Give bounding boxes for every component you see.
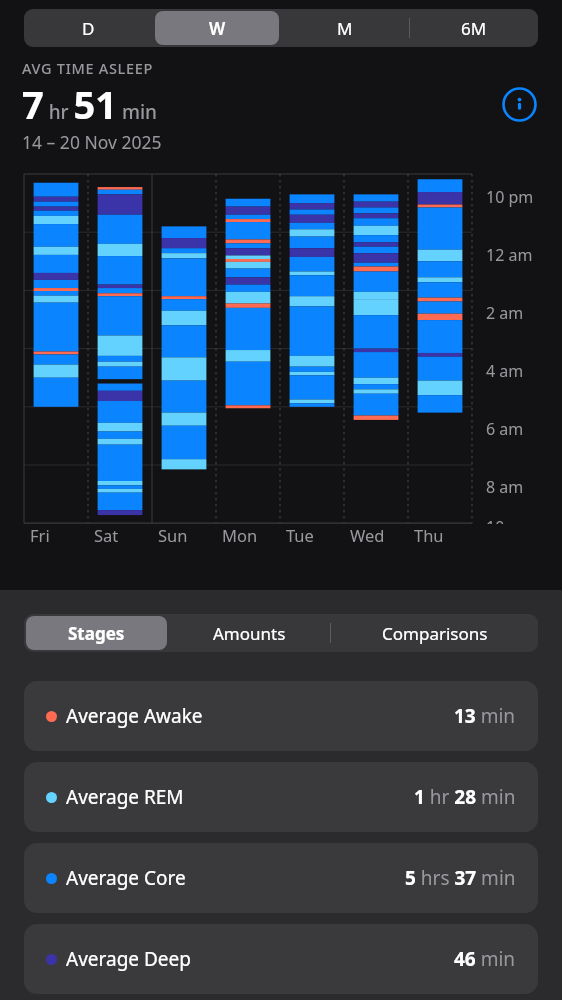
button[interactable]: Amounts [171, 616, 328, 650]
staticText: Average REM [66, 784, 414, 810]
staticText: Average Core [66, 865, 405, 891]
button[interactable]: Info [498, 83, 540, 125]
button[interactable]: W [155, 11, 279, 45]
staticText: 10 pm [486, 186, 534, 208]
staticText: 6 am [486, 418, 524, 440]
staticText: D [82, 17, 95, 40]
button[interactable]: Comparisons [333, 616, 536, 650]
staticText: Tue [286, 524, 314, 546]
staticText: 5 hrs 37 min [405, 865, 516, 891]
staticText: 7 hr 51 min [22, 78, 498, 130]
staticText: 4 am [486, 360, 524, 382]
staticText: 1 hr 28 min [414, 784, 516, 810]
staticText: Thu [414, 524, 444, 546]
button[interactable]: D [26, 11, 151, 45]
staticText: Sun [158, 524, 188, 546]
staticText: 46 min [454, 946, 516, 972]
staticText: 12 am [486, 244, 533, 266]
staticText: W [209, 17, 226, 40]
button[interactable]: Average Awake [24, 681, 538, 751]
staticText: M [337, 17, 353, 40]
staticText: 10 am [486, 516, 533, 524]
staticText: Stages [68, 622, 125, 645]
staticText: Average Awake [66, 703, 454, 729]
staticText: 6M [461, 17, 487, 40]
staticText: AVG TIME ASLEEP [22, 58, 154, 78]
staticText: 2 am [486, 302, 524, 324]
staticText: 14 – 20 Nov 2025 [22, 130, 162, 154]
button[interactable]: Stages [26, 616, 167, 650]
button[interactable]: M [283, 11, 407, 45]
staticText: Amounts [213, 622, 286, 645]
staticText: 8 am [486, 476, 524, 498]
staticText: Wed [350, 524, 385, 546]
staticText: Comparisons [382, 622, 488, 645]
button[interactable]: Average REM [24, 762, 538, 832]
button[interactable]: Average Deep [24, 924, 538, 994]
staticText: 13 min [454, 703, 516, 729]
staticText: Mon [222, 524, 258, 546]
button[interactable]: 6M [412, 11, 536, 45]
staticText: Average Deep [66, 946, 454, 972]
staticText: Sat [94, 524, 119, 546]
button[interactable]: Average Core [24, 843, 538, 913]
staticText: Fri [30, 524, 50, 546]
